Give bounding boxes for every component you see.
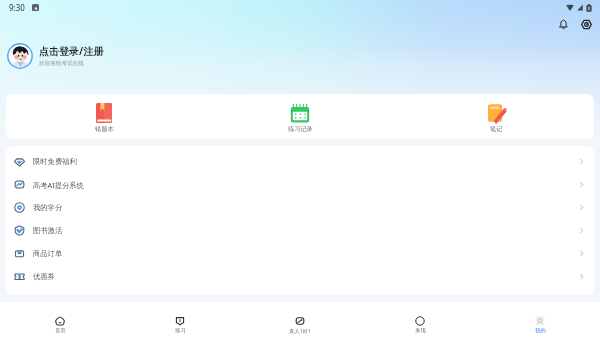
- button[interactable]: 发现: [360, 302, 480, 337]
- staticText: 练习: [175, 327, 186, 334]
- staticText: 高考AI提分系统: [33, 180, 84, 190]
- staticText: 商品订单: [33, 249, 63, 258]
- button[interactable]: 点击登录/注册: [0, 42, 110, 69]
- staticText: 优惠券: [33, 272, 55, 281]
- button[interactable]: Settings: [576, 14, 596, 34]
- staticText: 我的: [535, 327, 546, 334]
- button[interactable]: Notifications: [553, 14, 573, 34]
- staticText: 错题本: [95, 125, 114, 133]
- button[interactable]: 我的: [480, 302, 600, 337]
- staticText: 我的学分: [33, 203, 63, 212]
- button[interactable]: 高考AI提分系统: [6, 173, 594, 196]
- staticText: 真人1对1: [289, 327, 311, 334]
- staticText: 发现: [415, 327, 426, 334]
- staticText: 首页: [55, 327, 66, 334]
- button[interactable]: 练习记录: [202, 95, 398, 138]
- button[interactable]: 真人1对1: [240, 302, 360, 337]
- button[interactable]: 错题本: [6, 95, 202, 138]
- staticText: 9:30: [9, 2, 25, 13]
- staticText: 限时免费福利: [33, 157, 77, 166]
- staticText: 联系客服: [33, 317, 63, 326]
- button[interactable]: 练习: [120, 302, 240, 337]
- button[interactable]: 联系客服: [6, 310, 594, 333]
- staticText: 练习记录: [288, 125, 313, 133]
- button[interactable]: 我的学分: [6, 196, 594, 219]
- staticText: 欢迎来到考试在线: [39, 60, 84, 67]
- button[interactable]: 笔记: [398, 95, 594, 138]
- button[interactable]: 首页: [0, 302, 120, 337]
- button[interactable]: 图书激活: [6, 219, 594, 242]
- staticText: 笔记: [490, 125, 503, 133]
- staticText: 点击登录/注册: [39, 44, 104, 58]
- button[interactable]: 优惠券: [6, 265, 594, 288]
- button[interactable]: 商品订单: [6, 242, 594, 265]
- button[interactable]: 限时免费福利: [6, 150, 594, 173]
- staticText: 图书激活: [33, 226, 63, 235]
